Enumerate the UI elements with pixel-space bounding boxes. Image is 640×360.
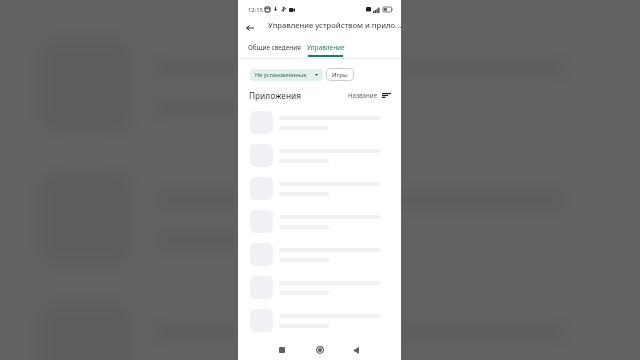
staticText: Название: [348, 91, 378, 99]
button[interactable]: Игры: [326, 68, 354, 81]
button[interactable]: Recent apps: [270, 338, 294, 360]
button[interactable]: [238, 238, 401, 271]
staticText: 12:15: [248, 6, 263, 14]
button[interactable]: [238, 304, 401, 337]
staticText: Приложения: [249, 90, 302, 101]
button[interactable]: Back: [344, 338, 368, 360]
staticText: Общие сведения: [248, 43, 301, 52]
staticText: Управление устройством и прило...: [268, 20, 401, 30]
button[interactable]: [238, 337, 401, 360]
staticText: Управление: [307, 43, 345, 52]
staticText: Игры: [332, 71, 348, 79]
button[interactable]: [238, 106, 401, 139]
button[interactable]: Управление: [307, 38, 345, 56]
button[interactable]: [238, 139, 401, 172]
button[interactable]: Back: [239, 17, 261, 39]
button[interactable]: Общие сведения: [248, 38, 301, 56]
button[interactable]: Не установленные: [250, 69, 323, 81]
staticText: Не установленные: [255, 71, 307, 79]
button[interactable]: Название: [348, 91, 391, 99]
button[interactable]: [238, 172, 401, 205]
button[interactable]: Home: [308, 338, 332, 360]
button[interactable]: [238, 205, 401, 238]
button[interactable]: [238, 271, 401, 304]
